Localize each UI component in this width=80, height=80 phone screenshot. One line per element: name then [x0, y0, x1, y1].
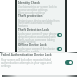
staticText: Theft protection [18, 14, 43, 18]
staticText: Offline Device Lock [18, 43, 47, 47]
staticText: settings [1, 64, 11, 68]
staticText: theft, such as someone taking [18, 38, 55, 42]
staticText: Identity Check [18, 1, 40, 5]
button[interactable]: Toggle setting [57, 47, 62, 51]
staticText: theft with automatic locking [18, 21, 53, 25]
staticText: Your screen will lock after repeated fai… [1, 58, 52, 62]
staticText: Use biometrics or screen lock to [18, 5, 57, 9]
staticText: access sensitive settings [18, 8, 48, 12]
button[interactable]: Toggle setting [65, 60, 73, 65]
staticText: authentication attempts in your apps and [1, 61, 52, 65]
staticText: Locks your screen if the device is [18, 47, 58, 51]
staticText: it and running [18, 40, 36, 44]
staticText: detects motion associated with [18, 35, 56, 39]
staticText: offline for a while [18, 50, 40, 54]
button[interactable]: Toggle setting [57, 33, 62, 37]
staticText: Locks your screen if your phone [18, 32, 57, 36]
staticText: Theft Detection Lock [18, 28, 50, 32]
staticText: features [18, 24, 29, 28]
button[interactable] [0, 52, 77, 75]
staticText: More security settings [18, 11, 45, 15]
staticText: Failed Authentication Device Lock [1, 53, 52, 57]
staticText: Protect your device and data from [18, 19, 60, 23]
